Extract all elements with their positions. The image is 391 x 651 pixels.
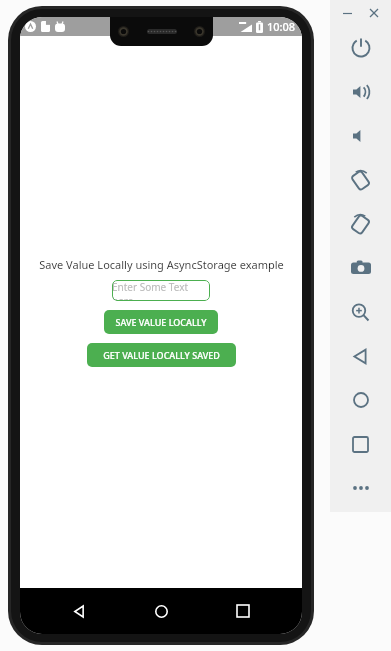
- button[interactable]: Volume down: [330, 114, 391, 158]
- button[interactable]: Screenshot: [330, 246, 391, 290]
- button[interactable]: More: [330, 466, 391, 510]
- staticText: 10:08: [267, 19, 296, 34]
- button[interactable]: Rotate right: [330, 202, 391, 246]
- button[interactable]: Back: [56, 588, 102, 634]
- button[interactable]: Zoom: [330, 290, 391, 334]
- button[interactable]: Volume up: [330, 70, 391, 114]
- button[interactable]: Rotate left: [330, 158, 391, 202]
- staticText: GET VALUE LOCALLY SAVED: [103, 349, 220, 361]
- button[interactable]: GET VALUE LOCALLY SAVED: [87, 343, 236, 367]
- button[interactable]: Close: [365, 4, 383, 22]
- staticText: Save Value Locally using AsyncStorage ex…: [39, 257, 284, 272]
- button[interactable]: Home: [138, 588, 184, 634]
- button[interactable]: Minimize: [338, 4, 356, 22]
- button[interactable]: Enter Some Text here: [112, 280, 210, 301]
- button[interactable]: Back: [330, 334, 391, 378]
- button[interactable]: Home: [330, 378, 391, 422]
- button[interactable]: SAVE VALUE LOCALLY: [104, 310, 218, 334]
- button[interactable]: Recents: [220, 588, 266, 634]
- staticText: SAVE VALUE LOCALLY: [115, 316, 207, 328]
- staticText: Enter Some Text here: [112, 280, 210, 301]
- button[interactable]: Overview: [330, 422, 391, 466]
- button[interactable]: Power: [330, 26, 391, 70]
